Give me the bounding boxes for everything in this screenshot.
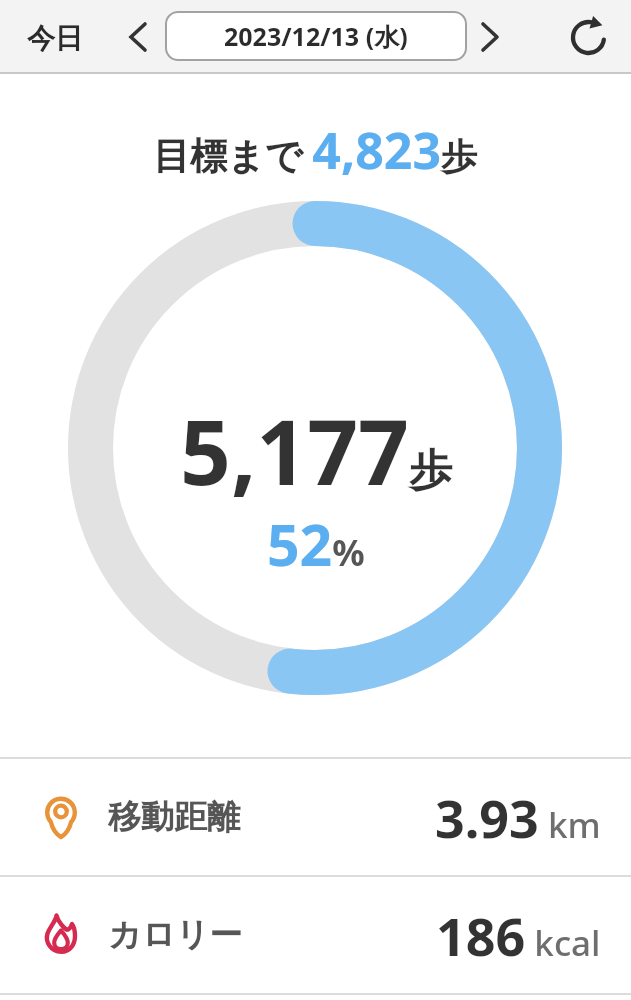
button[interactable]: 移動距離 [0,759,631,875]
button[interactable] [567,16,611,60]
staticText: 2023/12/13 (水) [224,19,408,53]
staticText: 移動距離 [108,796,240,838]
staticText: 今日 [27,21,83,56]
staticText: 目標まで 4,823歩 [153,116,478,184]
button[interactable] [120,18,154,56]
staticText: 52% [267,505,365,583]
button[interactable]: 2023/12/13 (水) [165,11,467,61]
button[interactable]: カロリー [0,877,631,993]
staticText: カロリー [108,914,243,956]
button[interactable]: 今日 [20,14,90,63]
button[interactable] [474,18,508,56]
staticText: 5,177歩 [180,390,452,511]
staticText: 3.93 km [435,782,601,853]
staticText: 186 kcal [436,900,601,971]
